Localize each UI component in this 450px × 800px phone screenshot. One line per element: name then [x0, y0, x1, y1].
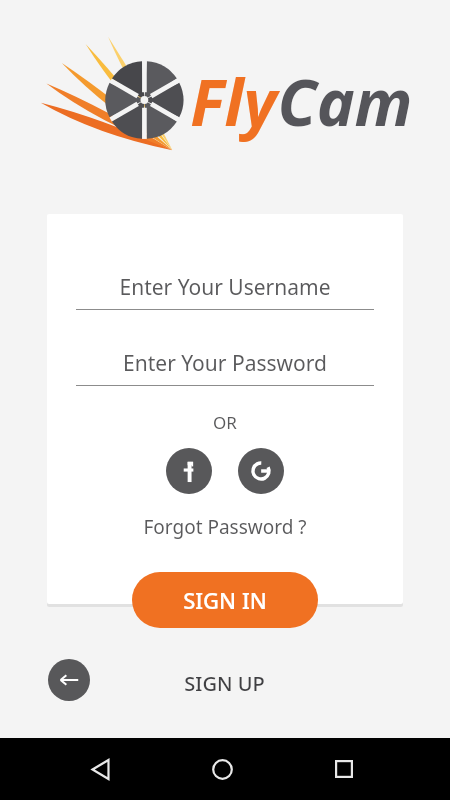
staticText: OR: [213, 411, 237, 434]
button[interactable]: SIGN IN: [132, 572, 318, 628]
button[interactable]: Home: [200, 747, 244, 791]
staticText: Forgot Password ?: [143, 514, 307, 540]
button[interactable]: Sign in with Facebook: [166, 448, 212, 494]
staticText: SIGN IN: [183, 585, 267, 615]
button[interactable]: Back: [78, 747, 122, 791]
button[interactable]: Back: [48, 659, 90, 701]
staticText: Cam: [277, 58, 413, 145]
staticText: SIGN UP: [184, 670, 265, 697]
staticText: Enter Your Username: [119, 273, 331, 302]
staticText: Fly: [190, 58, 277, 145]
button[interactable]: Enter Your Password: [76, 348, 374, 386]
button[interactable]: Sign in with Google: [238, 448, 284, 494]
button[interactable]: SIGN UP: [170, 664, 279, 703]
staticText: Enter Your Password: [123, 349, 327, 378]
button[interactable]: Forgot Password ?: [135, 512, 315, 542]
button[interactable]: Enter Your Username: [76, 272, 374, 310]
button[interactable]: Recent apps: [322, 747, 366, 791]
